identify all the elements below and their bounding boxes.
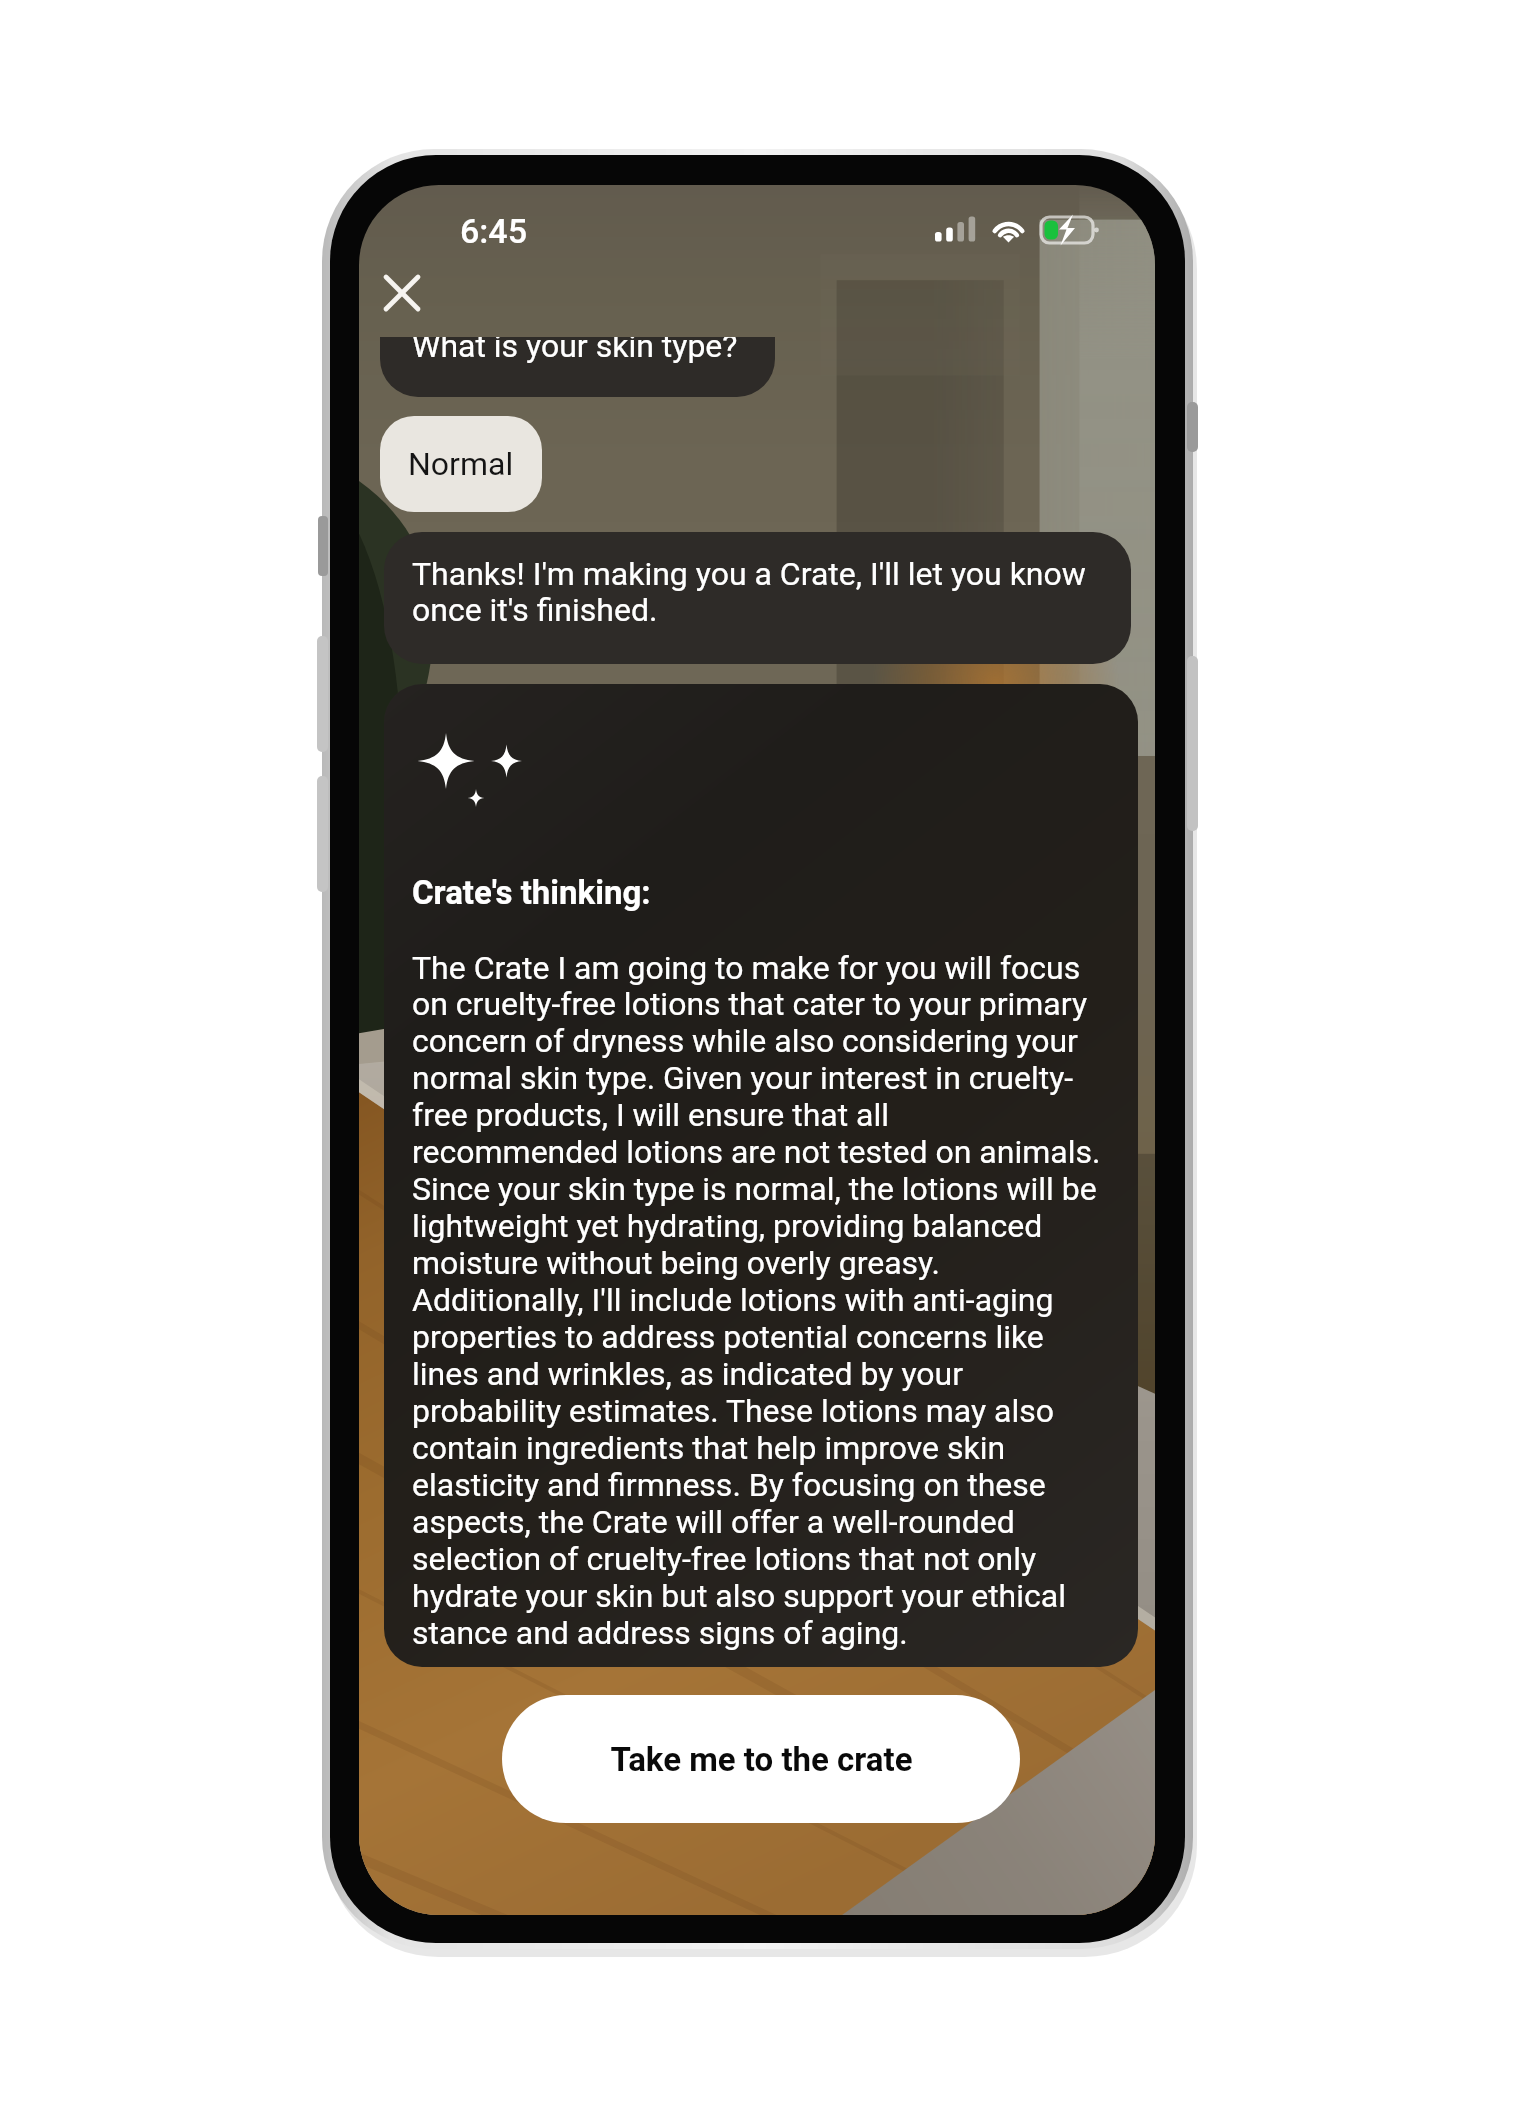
button[interactable]: Crate's thinking:: [384, 684, 1138, 1667]
button[interactable]: What is your skin type?: [380, 337, 775, 397]
staticText: 6:45: [460, 211, 527, 251]
staticText: The Crate I am going to make for you wil…: [412, 949, 1112, 1652]
button[interactable]: Take me to the crate: [502, 1695, 1020, 1823]
staticText: Thanks! I'm making you a Crate, I'll let…: [412, 555, 1086, 629]
button[interactable]: Thanks! I'm making you a Crate, I'll let…: [384, 532, 1131, 664]
staticText: What is your skin type?: [412, 337, 738, 365]
button[interactable]: Normal: [380, 416, 542, 512]
staticText: Normal: [408, 445, 514, 483]
button[interactable]: Close: [372, 263, 432, 323]
staticText: Take me to the crate: [610, 1740, 913, 1779]
staticText: Crate's thinking:: [412, 873, 651, 912]
